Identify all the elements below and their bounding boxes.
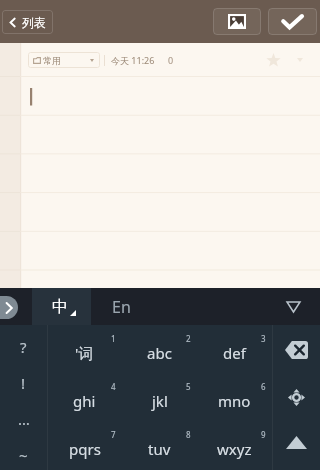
button[interactable]: 4 xyxy=(47,377,122,425)
button[interactable]: 5 xyxy=(122,377,197,425)
button[interactable]: 9 xyxy=(197,425,272,470)
staticText: 2 xyxy=(186,333,191,344)
button[interactable]: 中 xyxy=(32,288,91,325)
staticText: 4 xyxy=(111,381,116,392)
button[interactable]: 2 xyxy=(122,329,197,377)
staticText: 1 xyxy=(111,333,116,344)
staticText: 3 xyxy=(261,333,266,344)
staticText: 7 xyxy=(111,429,116,440)
staticText: pqrs xyxy=(69,439,101,459)
button[interactable]: 8 xyxy=(122,425,197,470)
button[interactable]: 6 xyxy=(197,377,272,425)
staticText: tuv xyxy=(148,439,171,459)
button[interactable]: Insert image xyxy=(213,8,261,35)
button[interactable]: Cursor xyxy=(273,371,320,419)
staticText: jkl xyxy=(152,391,168,411)
staticText: … xyxy=(18,409,30,429)
button[interactable]: ! xyxy=(0,365,47,401)
staticText: 列表 xyxy=(22,15,46,30)
button[interactable]: 常用 xyxy=(28,52,100,68)
staticText: ghi xyxy=(73,391,96,411)
button[interactable]: … xyxy=(0,401,47,437)
button[interactable]: ~ xyxy=(0,437,47,470)
staticText: wxyz xyxy=(217,439,252,459)
staticText: 今天 11:26 xyxy=(111,54,155,66)
button[interactable]: 7 xyxy=(47,425,122,470)
button[interactable]: 列表 xyxy=(2,10,53,34)
staticText: mno xyxy=(218,391,251,411)
button[interactable]: 3 xyxy=(197,329,272,377)
staticText: ! xyxy=(21,373,26,393)
button[interactable]: More xyxy=(292,52,308,68)
staticText: abc xyxy=(147,343,172,363)
button[interactable]: 1 xyxy=(47,329,122,377)
button[interactable]: Favorite xyxy=(262,49,284,71)
staticText: ? xyxy=(20,337,27,357)
button[interactable]: Enter xyxy=(273,419,320,469)
button[interactable]: Backspace xyxy=(273,325,320,371)
staticText: ~ xyxy=(19,445,28,465)
staticText: 9 xyxy=(261,429,266,440)
staticText: 8 xyxy=(186,429,191,440)
staticText: En xyxy=(112,296,131,318)
staticText: def xyxy=(223,343,246,363)
staticText: 0 xyxy=(168,54,174,66)
staticText: 中 xyxy=(52,297,68,317)
staticText: 5 xyxy=(186,381,191,392)
button[interactable]: ? xyxy=(0,329,47,365)
staticText: 常用 xyxy=(43,55,61,66)
button[interactable]: Hide keyboard xyxy=(283,297,303,317)
button[interactable]: Done xyxy=(268,8,317,35)
staticText: '词 xyxy=(75,343,94,363)
button[interactable]: Expand xyxy=(0,296,18,319)
button[interactable]: En xyxy=(91,288,151,325)
staticText: 6 xyxy=(261,381,266,392)
